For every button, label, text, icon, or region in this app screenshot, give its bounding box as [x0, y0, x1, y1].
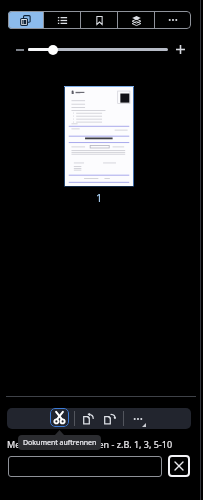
button[interactable]: Seitenbereich eingeben — [8, 456, 162, 477]
button[interactable]: Dokument auftrennen — [50, 408, 69, 427]
button[interactable]: Verkleinern — [10, 40, 29, 59]
button[interactable]: Mehr — [155, 11, 191, 29]
button[interactable]: Weitere Optionen — [128, 409, 147, 428]
button[interactable]: Lesezeichen — [81, 11, 117, 29]
button[interactable]: Zoom — [48, 45, 58, 55]
staticText: Dokument auftrennen — [23, 438, 97, 448]
button[interactable]: Seiten — [8, 11, 43, 29]
button[interactable]: Nach rechts drehen — [100, 409, 119, 428]
staticText: Mehrere einzelne Seiten - z.B. 1, 3, 5-1… — [7, 438, 173, 450]
button[interactable]: Nach links drehen — [79, 409, 98, 428]
button[interactable]: Schliessen — [168, 455, 190, 477]
staticText: 1 — [96, 190, 103, 203]
button[interactable]: Ebenen — [118, 11, 154, 29]
button[interactable]: Inhaltsverzeichnis — [44, 11, 80, 29]
button[interactable]: Seite 1 — [64, 86, 134, 187]
button[interactable]: Vergroessern — [171, 40, 190, 59]
